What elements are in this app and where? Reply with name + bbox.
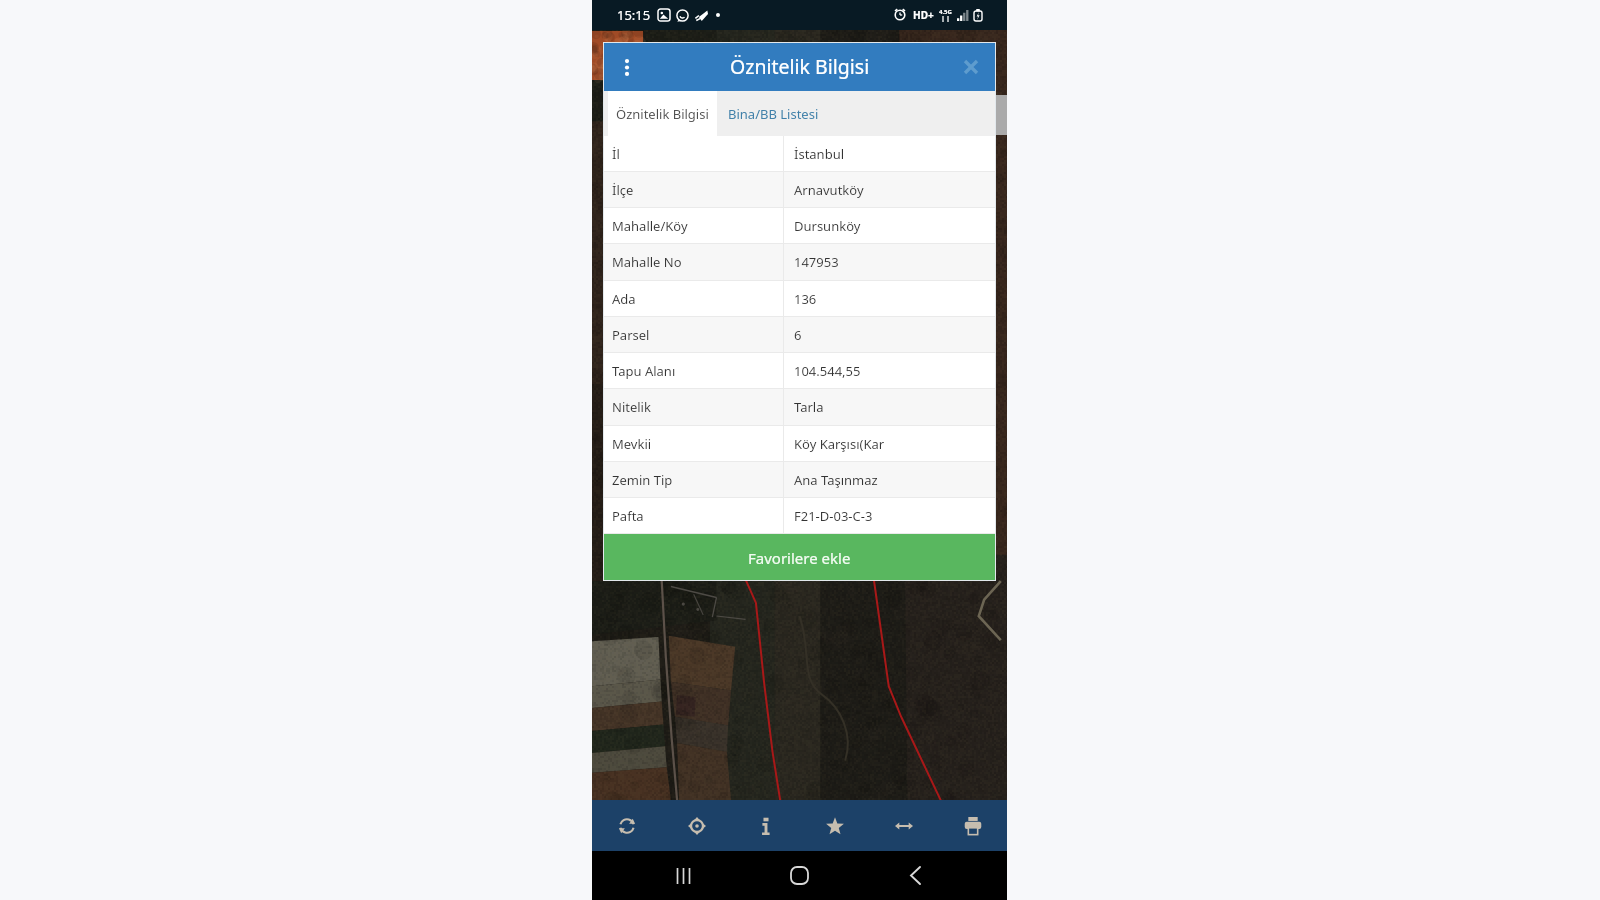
- button[interactable]: More options: [614, 54, 640, 80]
- staticText: 147953: [794, 253, 839, 271]
- staticText: 15:15: [617, 6, 651, 24]
- staticText: Ada: [612, 290, 636, 308]
- staticText: Dursunköy: [794, 217, 861, 235]
- staticText: Ana Taşınmaz: [794, 471, 878, 489]
- staticText: Parsel: [612, 326, 650, 344]
- staticText: Öznitelik Bilgisi: [616, 105, 709, 123]
- staticText: Arnavutköy: [794, 181, 864, 199]
- staticText: Tapu Alanı: [612, 362, 676, 380]
- button[interactable]: Measure distance: [869, 800, 938, 851]
- staticText: HD+: [913, 8, 934, 22]
- staticText: Köy Karşısı(Kar: [794, 435, 885, 453]
- staticText: 4.5G: [939, 8, 952, 16]
- button[interactable]: Bina/BB Listesi: [717, 91, 830, 136]
- staticText: İl: [612, 145, 620, 163]
- staticText: Öznitelik Bilgisi: [730, 53, 870, 80]
- button[interactable]: Print: [938, 800, 1007, 851]
- staticText: 6: [794, 326, 802, 344]
- button[interactable]: Locate: [662, 800, 731, 851]
- button[interactable]: Recents: [626, 851, 741, 900]
- button[interactable]: Add to favorites: [800, 800, 869, 851]
- staticText: Mahalle No: [612, 253, 682, 271]
- staticText: Zemin Tip: [612, 471, 673, 489]
- button[interactable]: Info: [731, 800, 800, 851]
- staticText: F21-D-03-C-3: [794, 507, 873, 525]
- button[interactable]: Close: [958, 54, 984, 80]
- staticText: İstanbul: [794, 145, 845, 163]
- staticText: Tarla: [794, 398, 824, 416]
- staticText: Favorilere ekle: [748, 548, 851, 568]
- staticText: Mevkii: [612, 435, 652, 453]
- button[interactable]: Refresh: [592, 800, 662, 851]
- staticText: Bina/BB Listesi: [728, 105, 819, 123]
- button[interactable]: Home: [741, 851, 857, 900]
- button[interactable]: Back: [857, 851, 973, 900]
- button[interactable]: Öznitelik Bilgisi: [608, 91, 717, 136]
- staticText: Nitelik: [612, 398, 651, 416]
- staticText: Pafta: [612, 507, 644, 525]
- button[interactable]: Favorilere ekle: [603, 534, 996, 581]
- staticText: Mahalle/Köy: [612, 217, 688, 235]
- staticText: 104.544,55: [794, 362, 861, 380]
- staticText: İlçe: [612, 181, 634, 199]
- staticText: 136: [794, 290, 817, 308]
